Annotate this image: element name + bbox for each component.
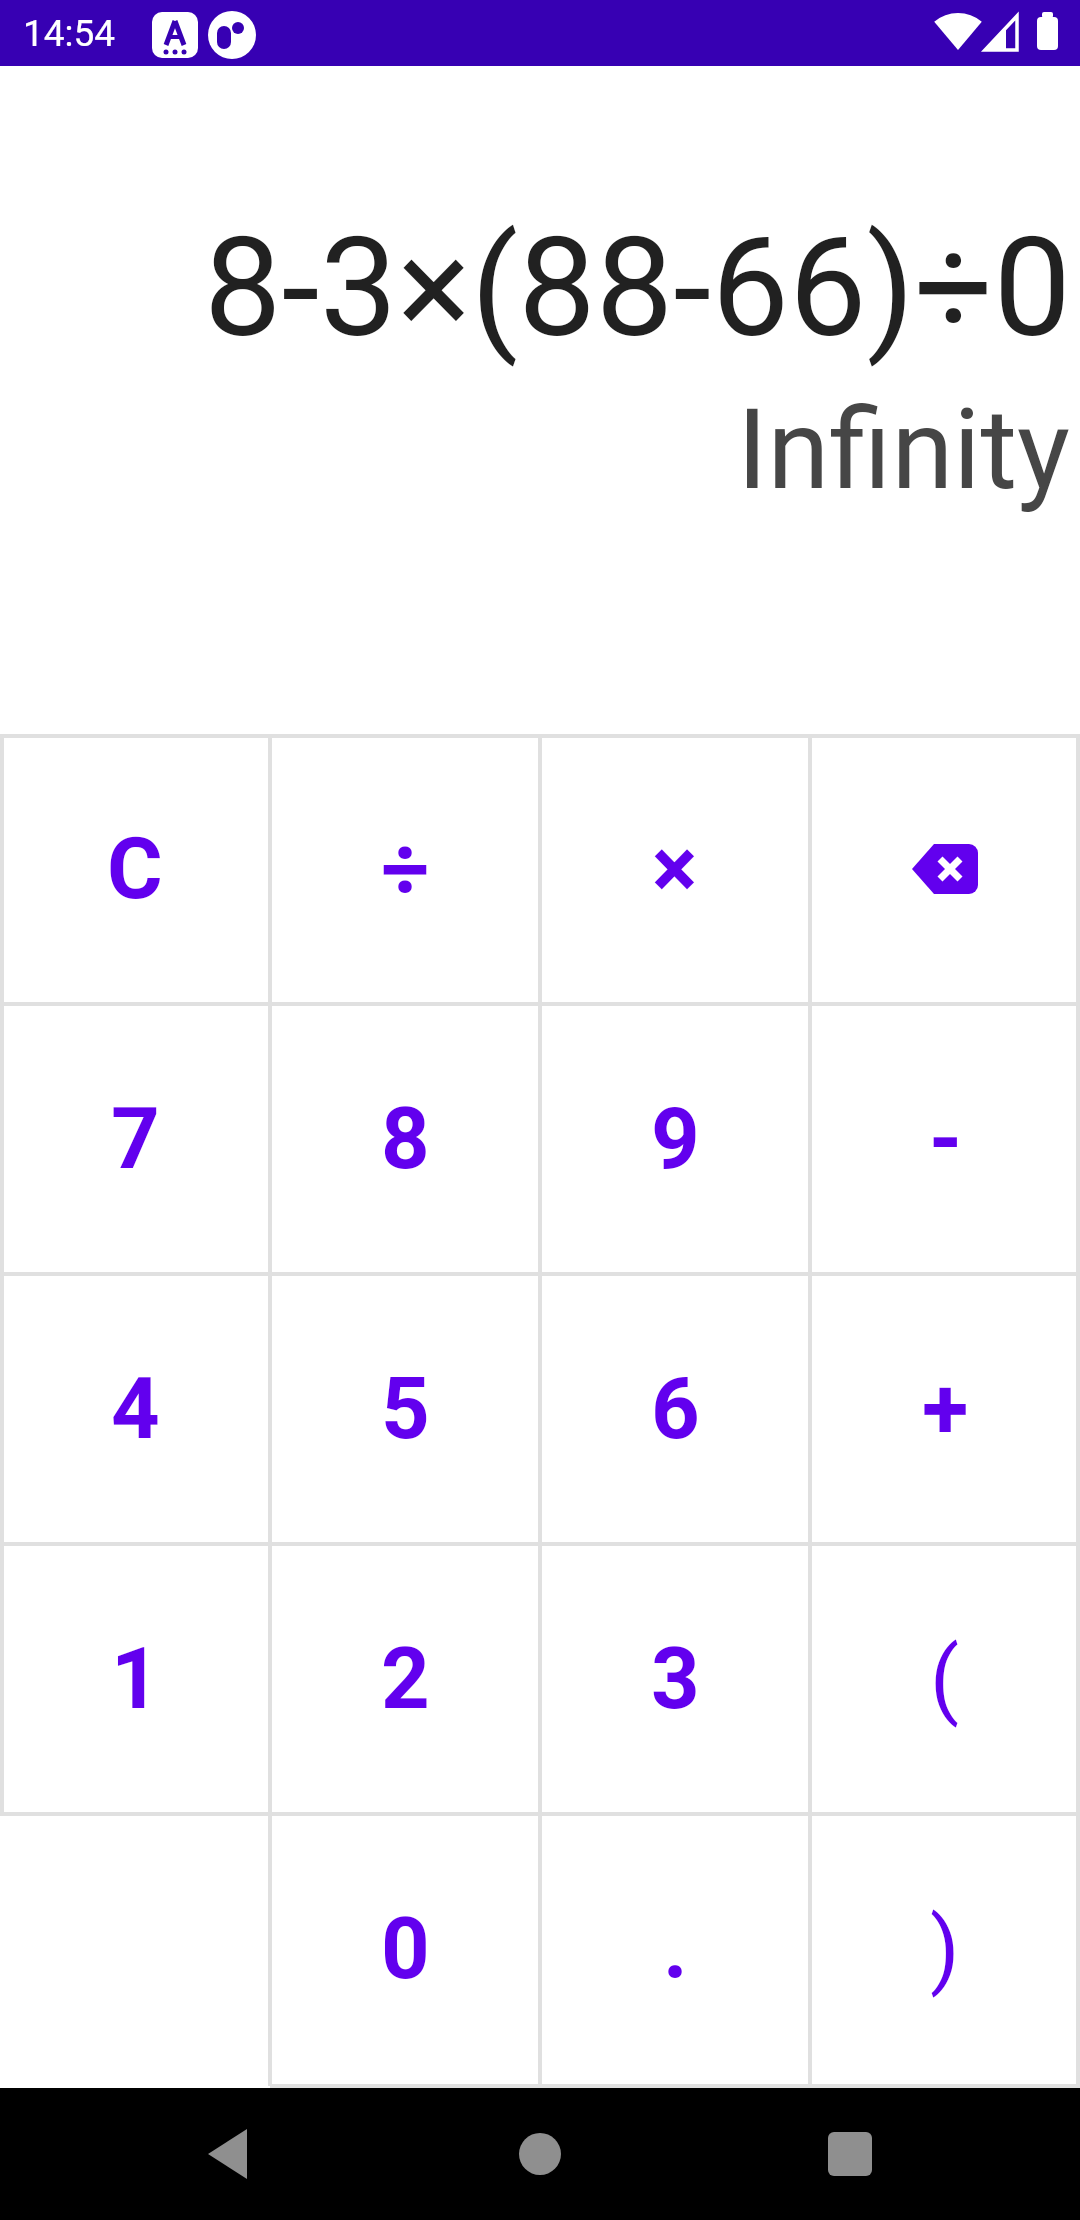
staticText: 2 (381, 1629, 430, 1729)
staticText: 5 (381, 1359, 430, 1459)
button[interactable]: 9 (540, 1004, 810, 1274)
staticText: . (663, 1899, 688, 1999)
staticText: + (922, 1359, 969, 1459)
staticText: × (652, 819, 698, 919)
button[interactable]: + (810, 1274, 1080, 1544)
button[interactable]: ( (810, 1544, 1080, 1814)
button[interactable]: 5 (270, 1274, 540, 1544)
button[interactable] (720, 2088, 1080, 2220)
button[interactable]: 7 (0, 1004, 270, 1274)
staticText: ) (930, 1899, 960, 1999)
staticText: C (107, 819, 163, 919)
staticText: 8-3×(88-66)÷0 (204, 207, 1071, 369)
staticText: ( (930, 1629, 960, 1729)
button[interactable]: ÷ (270, 734, 540, 1004)
staticText: - (929, 1089, 962, 1189)
button[interactable] (810, 734, 1080, 1004)
button[interactable]: 1 (0, 1544, 270, 1814)
staticText: 9 (651, 1089, 700, 1189)
staticText: ÷ (381, 819, 430, 919)
staticText: 0 (381, 1899, 430, 1999)
staticText: 14:54 (23, 12, 116, 55)
button[interactable]: 2 (270, 1544, 540, 1814)
button[interactable]: - (810, 1004, 1080, 1274)
button[interactable]: × (540, 734, 810, 1004)
staticText: 4 (111, 1359, 160, 1459)
button[interactable]: 0 (270, 1814, 540, 2084)
staticText: 8 (381, 1089, 430, 1189)
button[interactable]: C (0, 734, 270, 1004)
button[interactable] (360, 2088, 720, 2220)
staticText: Infinity (737, 384, 1071, 515)
button[interactable] (0, 2088, 360, 2220)
button[interactable]: 6 (540, 1274, 810, 1544)
staticText: 3 (651, 1629, 700, 1729)
staticText: 7 (111, 1089, 160, 1189)
button[interactable]: 4 (0, 1274, 270, 1544)
button[interactable]: 3 (540, 1544, 810, 1814)
button[interactable]: . (540, 1814, 810, 2084)
button[interactable]: 8 (270, 1004, 540, 1274)
button[interactable]: ) (810, 1814, 1080, 2084)
staticText: 1 (111, 1629, 160, 1729)
staticText: 6 (651, 1359, 700, 1459)
